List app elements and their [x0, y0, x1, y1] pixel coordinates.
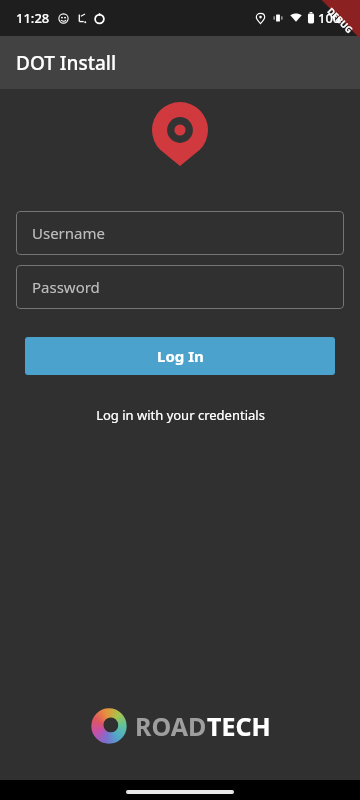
- staticText: Password: [32, 277, 100, 297]
- staticText: TECH: [207, 709, 271, 743]
- staticText: DEBUG: [325, 5, 356, 35]
- button[interactable]: Username: [16, 211, 344, 255]
- button[interactable]: Log In: [25, 337, 335, 375]
- staticText: Log In: [157, 346, 204, 366]
- staticText: ROAD: [135, 709, 207, 743]
- staticText: DOT Install: [16, 50, 117, 76]
- staticText: 11:28: [16, 9, 50, 27]
- staticText: Log in with your credentials: [96, 406, 265, 424]
- button[interactable]: Password: [16, 265, 344, 309]
- staticText: 100%: [318, 9, 352, 27]
- staticText: Username: [32, 223, 105, 243]
